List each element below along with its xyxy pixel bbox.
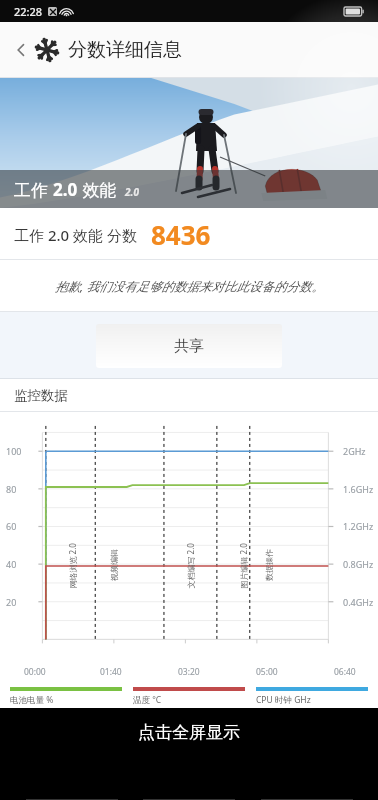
staticText: 05:00 [256,666,278,678]
staticText: 1.2GHz [343,520,374,532]
staticText: 01:40 [100,666,122,678]
staticText: 0.4GHz [343,596,374,608]
button[interactable]: Back [8,37,34,63]
staticText: 80 [6,483,17,495]
staticText: 抱歉, 我们没有足够的数据来对比此设备的分数。 [55,278,324,295]
staticText: 2.0 [53,178,78,201]
staticText: 文档编写 2.0 [184,542,195,588]
button[interactable]: 100 [0,412,378,684]
staticText: 工作 [14,178,53,201]
staticText: 100 [6,445,22,457]
staticText: CPU 时钟 GHz [256,694,311,705]
staticText: 60 [6,520,17,532]
staticText: 06:40 [334,666,356,678]
staticText: 电池电量 % [10,694,54,705]
staticText: 20 [6,596,17,608]
staticText: 0.8GHz [343,558,374,570]
staticText: 8436 [151,217,211,252]
button[interactable]: 点击全屏显示 [0,708,378,800]
staticText: 03:20 [178,666,200,678]
staticText: 效能 [78,178,117,201]
button[interactable]: 共享 [96,324,282,368]
staticText: 视频编辑 [109,549,119,581]
staticText: 2.0 [125,185,139,199]
staticText: 网络浏览 2.0 [66,542,77,588]
staticText: 2GHz [343,445,366,457]
staticText: 工作 2.0 效能 分数 [14,225,137,245]
staticText: 监控数据 [14,387,68,404]
staticText: 温度 °C [133,694,162,705]
staticText: 分数详细信息 [68,38,182,62]
staticText: 图片编辑 2.0 [237,542,248,588]
staticText: 1.6GHz [343,483,374,495]
staticText: 40 [6,558,17,570]
staticText: 数据操作 [264,549,274,581]
staticText: 点击全屏显示 [138,722,240,743]
staticText: 共享 [174,337,204,356]
staticText: 22:28 [14,4,43,19]
staticText: 00:00 [24,666,46,678]
